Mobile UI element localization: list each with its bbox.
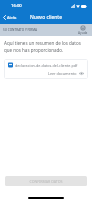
staticText: Aquí tienes un resumen de los datos que … <box>4 40 88 53</box>
staticText: Atrás <box>7 15 17 20</box>
other: Ayuda <box>81 26 85 30</box>
staticText: Leer documento <box>48 71 77 76</box>
staticText: SU CONTRATO Y FIRMA <box>3 28 38 32</box>
staticText: 16:00 <box>11 3 22 9</box>
staticText: CONFIRMAR DATOS <box>29 179 63 184</box>
staticText: declaracion-de-datos-del-cliente.pdf <box>15 63 78 68</box>
button[interactable]: Ayuda <box>78 26 92 35</box>
staticText: Nuevo cliente <box>30 14 62 21</box>
other: Atrás <box>3 15 6 20</box>
staticText: Ayuda <box>78 31 88 35</box>
button[interactable]: Atrás <box>0 13 19 22</box>
button[interactable]: CONFIRMAR DATOS <box>5 176 87 186</box>
button[interactable]: PDF <box>4 59 88 79</box>
other: PDF <box>8 62 13 68</box>
